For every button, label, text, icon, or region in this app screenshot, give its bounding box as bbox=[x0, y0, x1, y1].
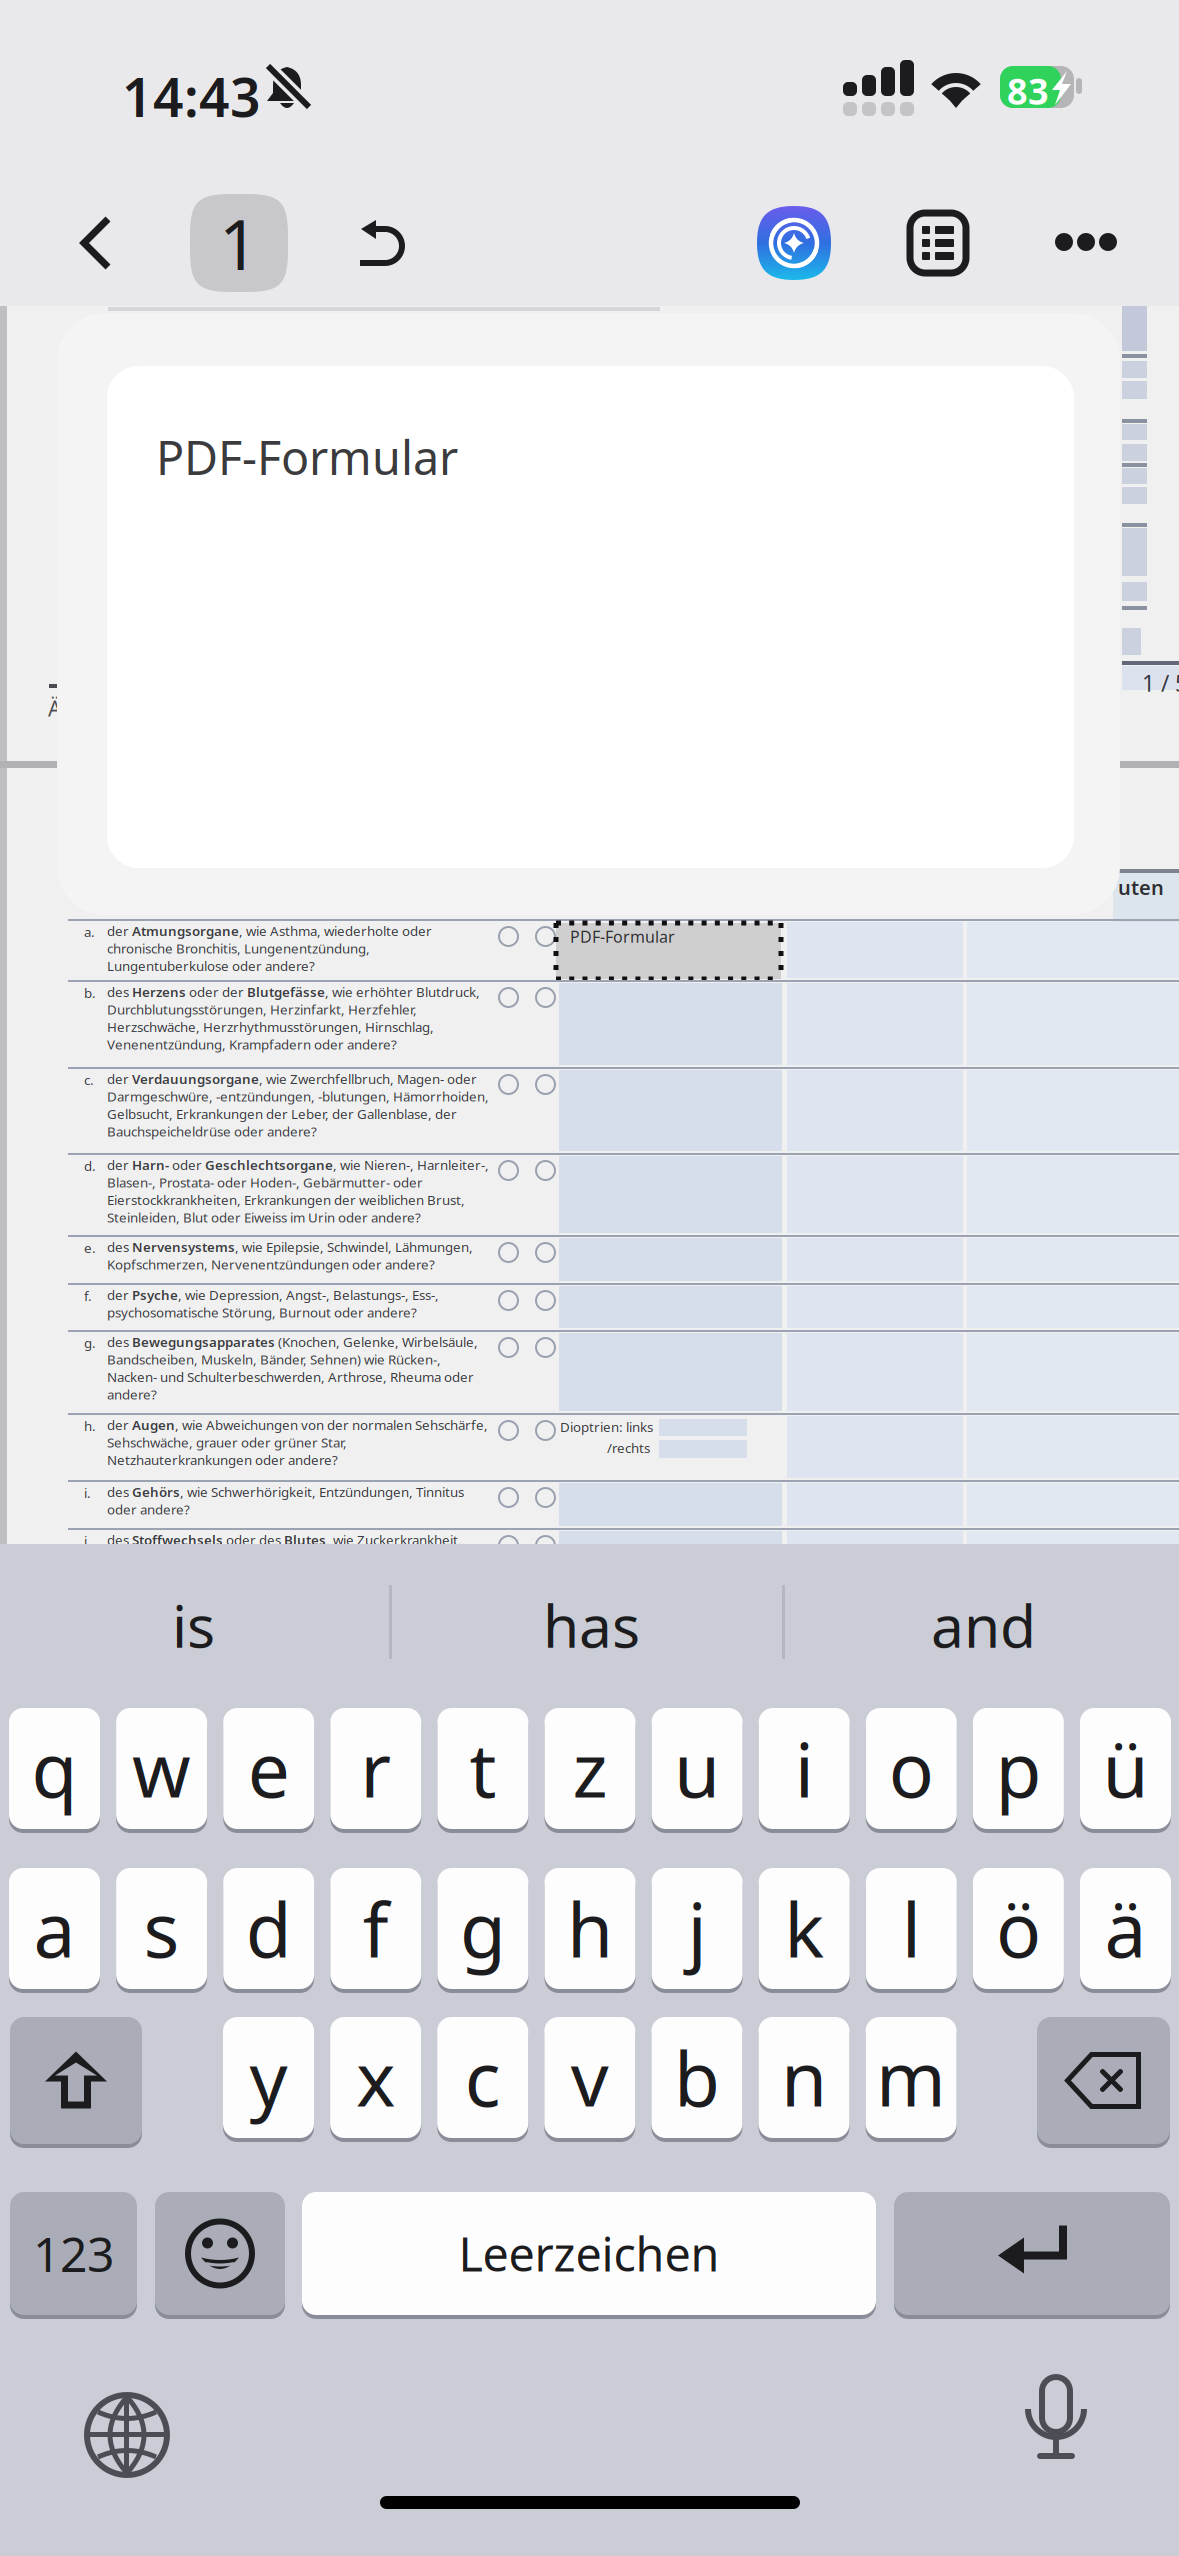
staticText: Nervensystems bbox=[132, 1238, 235, 1256]
staticText: Geschlechtsorgane bbox=[205, 1156, 333, 1174]
button[interactable]: i bbox=[759, 1708, 850, 1834]
button[interactable]: s bbox=[116, 1868, 207, 1994]
button[interactable]: x bbox=[330, 2017, 421, 2143]
button[interactable]: k bbox=[759, 1868, 850, 1994]
staticText: des bbox=[107, 1483, 132, 1501]
button[interactable]: ö bbox=[973, 1868, 1064, 1994]
staticText: der bbox=[107, 1286, 132, 1304]
button[interactable]: Form fields bbox=[886, 191, 990, 295]
staticText: h bbox=[567, 1879, 613, 1978]
staticText: Stoffwechsels bbox=[132, 1531, 223, 1549]
button[interactable]: ü bbox=[1080, 1708, 1171, 1834]
staticText: oder der bbox=[186, 983, 247, 1001]
staticText: i bbox=[795, 1719, 814, 1818]
staticText: a. bbox=[84, 923, 95, 941]
button[interactable]: w bbox=[116, 1708, 207, 1834]
staticText: Kopfschmerzen, Nervenentzündungen oder a… bbox=[107, 1255, 435, 1273]
staticText: , wie Abweichungen von der normalen Sehs… bbox=[175, 1416, 488, 1434]
staticText: z bbox=[572, 1719, 607, 1818]
staticText: c. bbox=[84, 1071, 94, 1089]
staticText: Sehschwäche, grauer oder grüner Star, bbox=[107, 1433, 347, 1451]
staticText: Blutes bbox=[284, 1531, 326, 1549]
staticText: o bbox=[889, 1719, 934, 1818]
button[interactable]: ä bbox=[1080, 1868, 1171, 1994]
staticText: /rechts bbox=[607, 1439, 650, 1457]
staticText: Ä bbox=[48, 694, 62, 722]
staticText: Dioptrien: links bbox=[560, 1418, 653, 1436]
staticText: n bbox=[781, 2028, 827, 2127]
button[interactable]: o bbox=[866, 1708, 957, 1834]
button[interactable]: z bbox=[544, 1708, 635, 1834]
button[interactable]: f bbox=[330, 1868, 421, 1994]
button[interactable]: Emoji bbox=[155, 2192, 285, 2320]
staticText: e. bbox=[84, 1239, 96, 1257]
staticText: Lungentuberkulose oder andere? bbox=[107, 957, 315, 975]
staticText: f. bbox=[84, 1287, 92, 1305]
staticText: 123 bbox=[33, 2222, 114, 2285]
button[interactable]: a bbox=[9, 1868, 100, 1994]
staticText: u bbox=[674, 1719, 720, 1818]
button[interactable]: is bbox=[0, 1544, 390, 1658]
button[interactable]: 123 bbox=[10, 2192, 137, 2320]
button[interactable]: e bbox=[223, 1708, 314, 1834]
staticText: g bbox=[460, 1879, 506, 1978]
staticText: 1 bbox=[219, 197, 259, 289]
staticText: 1 / 5 bbox=[1142, 668, 1179, 698]
staticText: j bbox=[688, 1879, 707, 1978]
button[interactable]: u bbox=[652, 1708, 743, 1834]
button[interactable]: y bbox=[223, 2017, 314, 2143]
staticText: Darmgeschwüre, -entzündungen, -blutungen… bbox=[107, 1087, 489, 1105]
button[interactable]: and bbox=[0, 1544, 393, 1658]
staticText: Steinleiden, Blut oder Eiweiss im Urin o… bbox=[107, 1208, 421, 1226]
staticText: Blasen-, Prostata- oder Hoden-, Gebärmut… bbox=[107, 1173, 423, 1191]
staticText: and bbox=[931, 1586, 1036, 1664]
button[interactable]: b bbox=[651, 2017, 742, 2143]
button[interactable]: Undo bbox=[329, 192, 433, 296]
staticText: d. bbox=[84, 1157, 96, 1175]
button[interactable]: v bbox=[544, 2017, 635, 2143]
staticText: k bbox=[784, 1879, 824, 1978]
staticText: d bbox=[246, 1879, 292, 1978]
button[interactable]: r bbox=[330, 1708, 421, 1834]
button[interactable]: j bbox=[652, 1868, 743, 1994]
button[interactable]: m bbox=[866, 2017, 957, 2143]
button[interactable]: d bbox=[223, 1868, 314, 1994]
staticText: q bbox=[31, 1719, 77, 1818]
button[interactable]: Back bbox=[44, 191, 148, 295]
staticText: Herzschwäche, Herzrhythmusstörungen, Hir… bbox=[107, 1018, 434, 1036]
button[interactable]: h bbox=[544, 1868, 635, 1994]
staticText: des bbox=[107, 1531, 132, 1549]
button[interactable]: has bbox=[0, 1544, 394, 1658]
button[interactable]: g bbox=[437, 1868, 528, 1994]
staticText: v bbox=[571, 2028, 609, 2127]
staticText: Leerzeichen bbox=[458, 2222, 719, 2284]
button[interactable]: t bbox=[437, 1708, 528, 1834]
staticText: Durchblutungsstörungen, Herzinfarkt, Her… bbox=[107, 1000, 417, 1018]
staticText: PDF-Formular bbox=[570, 926, 675, 947]
staticText: is bbox=[172, 1586, 215, 1664]
button[interactable]: p bbox=[973, 1708, 1064, 1834]
staticText: oder andere? bbox=[107, 1500, 190, 1518]
staticText: , wie Nieren-, Harnleiter-, bbox=[333, 1156, 489, 1174]
button[interactable]: Delete bbox=[1037, 2017, 1170, 2149]
staticText: Herzens bbox=[132, 983, 186, 1001]
staticText: ü bbox=[1102, 1719, 1148, 1818]
button[interactable]: n bbox=[758, 2017, 849, 2143]
staticText: ö bbox=[996, 1879, 1041, 1978]
button[interactable]: AI Assistant bbox=[742, 191, 846, 295]
button[interactable]: More bbox=[1045, 189, 1149, 293]
button[interactable]: Dictate bbox=[996, 2359, 1116, 2479]
button[interactable]: Shift bbox=[10, 2017, 142, 2149]
button[interactable]: Return bbox=[894, 2192, 1170, 2320]
button[interactable]: Switch keyboard bbox=[67, 2375, 187, 2495]
button[interactable]: l bbox=[866, 1868, 957, 1994]
staticText: der bbox=[107, 1070, 132, 1088]
button[interactable]: q bbox=[9, 1708, 100, 1834]
staticText: i. bbox=[84, 1484, 91, 1502]
button[interactable]: Leerzeichen bbox=[302, 2192, 876, 2320]
button[interactable]: 1 bbox=[187, 191, 291, 295]
staticText: der bbox=[107, 1156, 132, 1174]
staticText: w bbox=[132, 1719, 191, 1818]
button[interactable]: c bbox=[437, 2017, 528, 2143]
staticText: oder bbox=[169, 1156, 205, 1174]
